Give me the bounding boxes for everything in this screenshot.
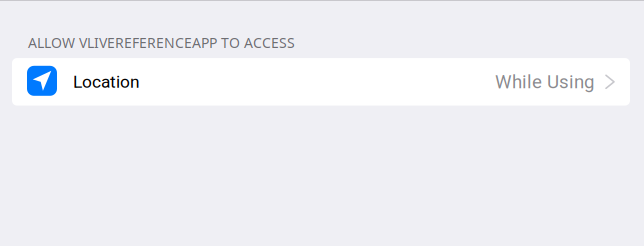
staticText: Location [73,72,140,92]
staticText: ALLOW VLIVEREFERENCEAPP TO ACCESS [28,33,295,52]
button[interactable]: Location [12,58,630,106]
staticText: While Using [495,71,594,93]
